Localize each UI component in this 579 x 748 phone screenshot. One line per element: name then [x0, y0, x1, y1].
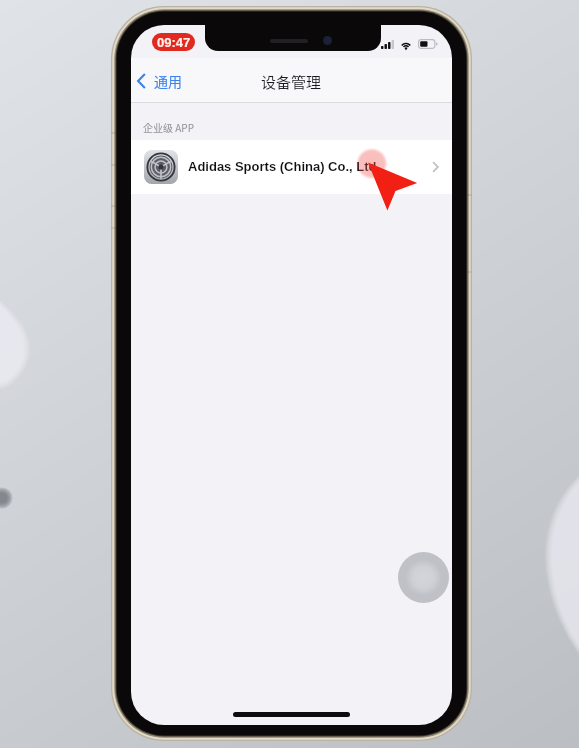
- staticText: Adidas Sports (China) Co., Ltd: [188, 159, 377, 174]
- staticText: 企业级 APP: [143, 120, 194, 134]
- staticText: 09:47: [157, 35, 191, 50]
- button[interactable]: 通用: [131, 66, 192, 96]
- button[interactable]: Adidas Sports (China) Co., Ltd: [131, 140, 452, 194]
- staticText: 通用: [154, 71, 182, 91]
- staticText: 设备管理: [261, 71, 322, 93]
- button[interactable]: AssistiveTouch: [398, 552, 449, 603]
